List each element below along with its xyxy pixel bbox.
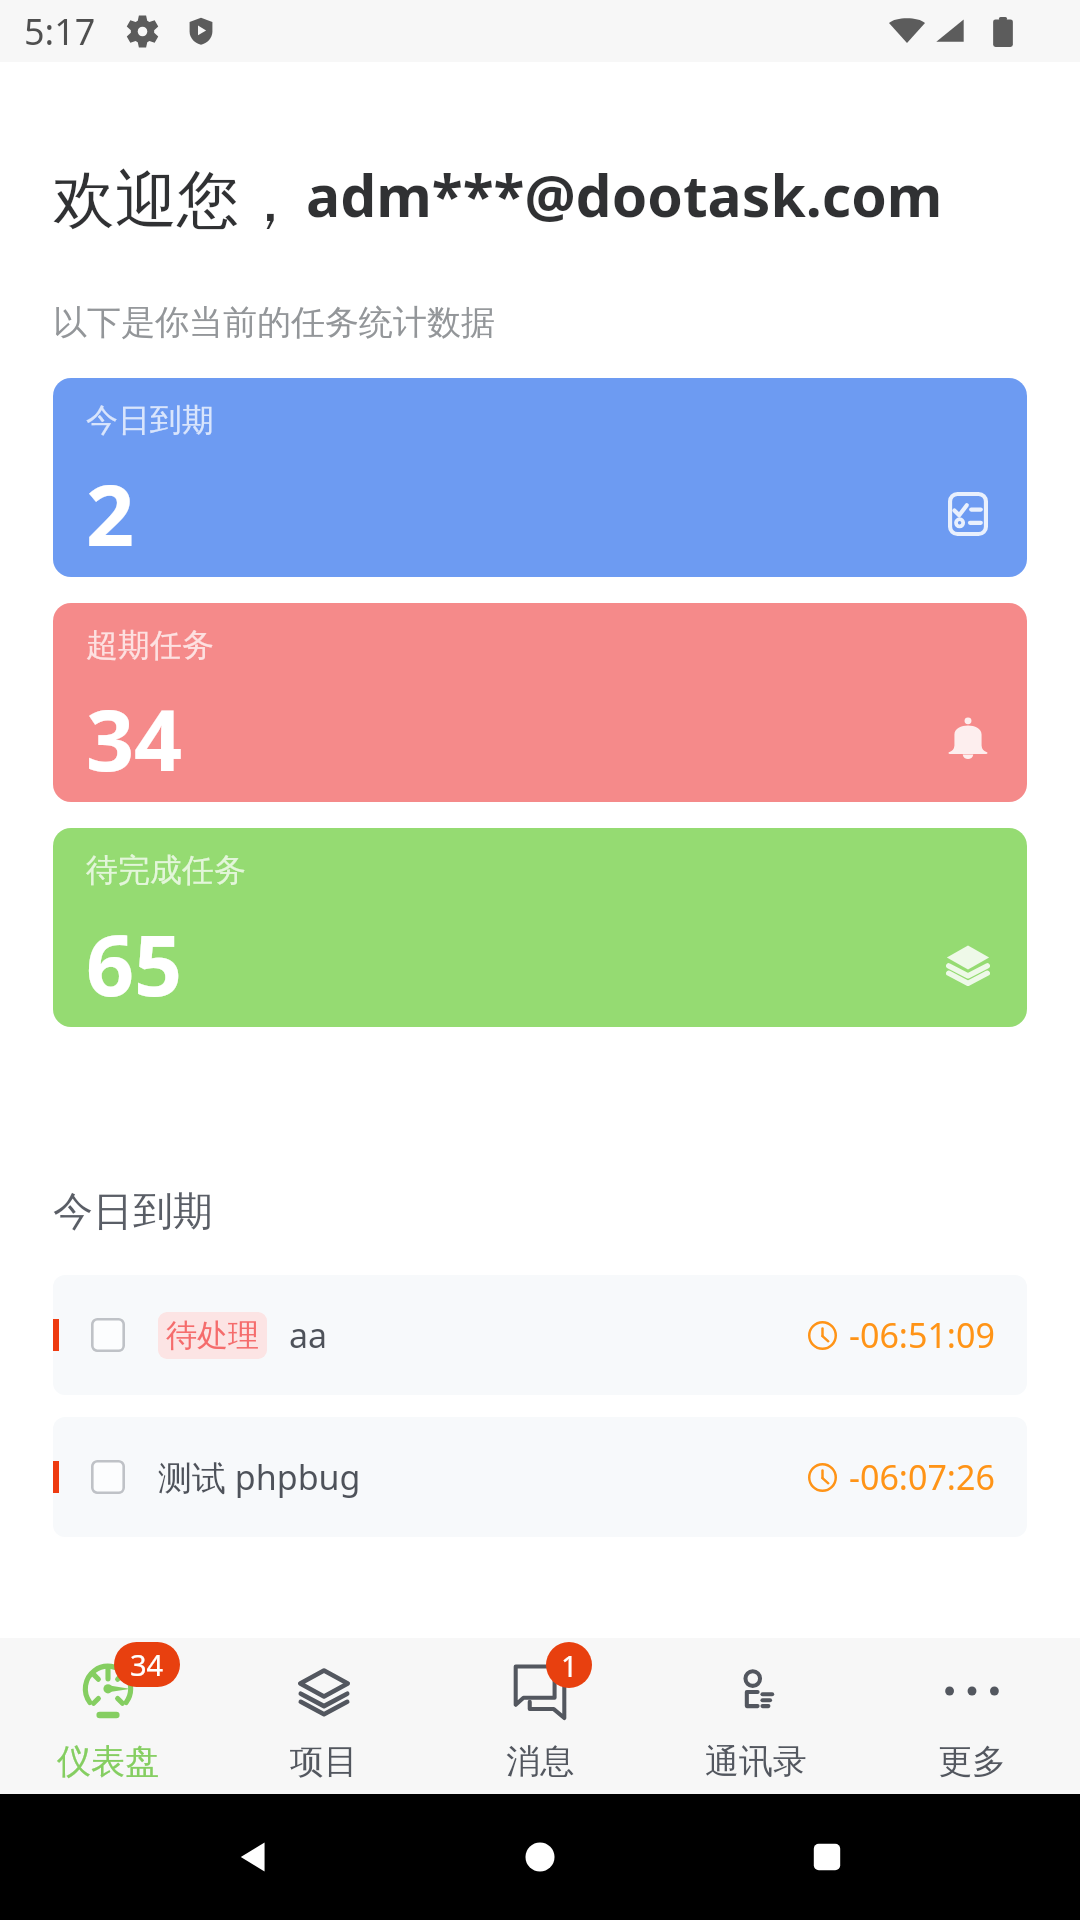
button[interactable]: Contacts [648,1638,864,1794]
button[interactable]: 超期任务 [53,603,1027,802]
staticText: 待完成任务 [86,850,246,890]
button[interactable]: Complete task [91,1318,125,1352]
staticText: 通讯录 [705,1740,807,1783]
staticText: 欢迎您， [53,161,301,239]
staticText: 今日到期 [86,400,214,440]
other: Pending tasks [945,941,991,987]
button[interactable]: 今日到期 [53,378,1027,577]
button[interactable]: Messages [432,1638,648,1794]
staticText: 34 [86,681,183,795]
staticText: 待处理 [166,1316,259,1355]
button[interactable]: Back [221,1824,287,1890]
staticText: 项目 [290,1740,358,1783]
button[interactable]: Complete task [53,1417,1027,1537]
other: Messages [513,1664,567,1718]
staticText: 34 [130,1645,164,1684]
other: Dashboard [81,1664,135,1718]
other: Projects [297,1664,351,1718]
staticText: 5:17 [24,7,96,56]
staticText: -06:07:26 [849,1454,995,1500]
staticText: 以下是你当前的任务统计数据 [53,301,495,344]
staticText: 今日到期 [53,1186,213,1236]
staticText: 1 [561,1646,578,1685]
other: Contacts [729,1664,783,1718]
staticText: 65 [86,906,183,1020]
staticText: 更多 [938,1740,1006,1783]
other: Overdue tasks [945,716,991,762]
button[interactable]: Complete task [91,1460,125,1494]
staticText: 2 [86,456,135,570]
button[interactable]: Complete task [53,1275,1027,1395]
button[interactable]: Home [507,1824,573,1890]
staticText: adm***@dootask.com [306,156,943,234]
staticText: aa [289,1312,328,1358]
button[interactable]: Projects [216,1638,432,1794]
button[interactable]: Recent apps [794,1824,860,1890]
staticText: -06:51:09 [849,1312,995,1358]
staticText: 测试 phpbug [158,1454,361,1500]
staticText: 超期任务 [86,625,214,665]
staticText: 仪表盘 [57,1740,159,1783]
other: More [945,1664,999,1718]
staticText: 消息 [506,1740,574,1783]
button[interactable]: Dashboard [0,1638,216,1794]
other: Tasks due today [945,491,991,537]
button[interactable]: 待完成任务 [53,828,1027,1027]
button[interactable]: More [864,1638,1080,1794]
